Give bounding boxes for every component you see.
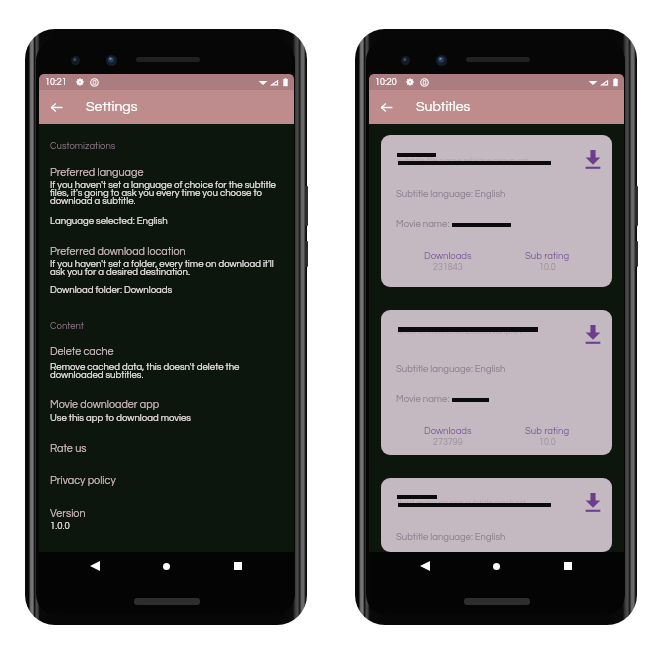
- staticText: Version: [50, 508, 86, 519]
- staticText: Movie name:: [396, 394, 452, 404]
- staticText: Use this app to download movies: [50, 413, 191, 423]
- staticText: 1.0.0: [50, 521, 70, 531]
- staticText: 10:21: [45, 78, 67, 87]
- staticText: 10.0: [539, 438, 556, 447]
- button[interactable]: Movie downloader app: [39, 399, 294, 411]
- button[interactable]: Rate us: [39, 443, 294, 455]
- button[interactable]: Delete cache: [39, 346, 294, 358]
- staticText: subtitle.file.name.release.group.srt: [397, 156, 528, 165]
- staticText: Content: [50, 321, 84, 331]
- staticText: If you haven't set a language of choice …: [50, 180, 283, 206]
- staticText: Movie name:: [396, 219, 452, 229]
- staticText: 10:20: [375, 78, 397, 87]
- staticText: 10.0: [539, 263, 556, 272]
- staticText: Preferred download location: [50, 246, 186, 257]
- staticText: Preferred language: [50, 167, 144, 178]
- button[interactable]: Preferred download location: [39, 246, 294, 258]
- button[interactable]: Home: [152, 552, 180, 580]
- staticText: Download folder: Downloads: [50, 285, 173, 295]
- button[interactable]: Download subtitle: [581, 322, 605, 346]
- staticText: third.entry.source.subtitle.pack.srt: [397, 498, 526, 507]
- staticText: Remove cached data, this doesn't delete …: [50, 362, 283, 380]
- staticText: Language selected: English: [50, 216, 168, 226]
- staticText: Subtitles: [416, 100, 471, 114]
- button[interactable]: Navigate up: [369, 90, 403, 124]
- staticText: If you haven't set a folder, every time …: [50, 259, 283, 277]
- staticText: Delete cache: [50, 346, 114, 357]
- staticText: Subtitle language: English: [396, 532, 506, 542]
- button[interactable]: Privacy policy: [39, 475, 294, 487]
- button[interactable]: subtitle.file.name.release.group.srt: [381, 135, 612, 287]
- staticText: Rate us: [50, 443, 87, 454]
- staticText: Privacy policy: [50, 475, 116, 486]
- staticText: Settings: [86, 100, 138, 114]
- button[interactable]: Back: [411, 552, 439, 580]
- staticText: Subtitle language: English: [396, 364, 506, 374]
- staticText: Sub rating: [525, 426, 570, 436]
- button[interactable]: Home: [482, 552, 510, 580]
- button[interactable]: Navigate up: [39, 90, 73, 124]
- staticText: another.movie.file.2008.dvdrip.srt: [397, 327, 523, 336]
- staticText: 231843: [433, 263, 463, 272]
- button[interactable]: Download subtitle: [581, 490, 605, 514]
- button[interactable]: third.entry.source.subtitle.pack.srt: [381, 478, 612, 552]
- staticText: Sub rating: [525, 251, 570, 261]
- staticText: 273799: [433, 438, 463, 447]
- button[interactable]: Recent apps: [224, 552, 252, 580]
- staticText: Downloads: [424, 426, 472, 436]
- button[interactable]: Recent apps: [554, 552, 582, 580]
- staticText: Subtitle language: English: [396, 189, 506, 199]
- staticText: Customizations: [50, 141, 116, 151]
- button[interactable]: Download subtitle: [581, 147, 605, 171]
- staticText: Movie downloader app: [50, 399, 160, 410]
- button[interactable]: Preferred language: [39, 167, 294, 179]
- button[interactable]: Version: [39, 508, 294, 520]
- button[interactable]: Back: [81, 552, 109, 580]
- staticText: Downloads: [424, 251, 472, 261]
- button[interactable]: another.movie.file.2008.dvdrip.srt: [381, 310, 612, 455]
